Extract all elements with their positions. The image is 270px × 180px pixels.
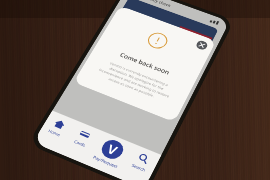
button[interactable]: Cards: [65, 124, 101, 152]
button[interactable]: Close: [195, 39, 209, 51]
staticText: Venmo is currently encountering a disrup…: [94, 58, 176, 104]
button[interactable]: Pay or Request: [98, 137, 127, 162]
button[interactable]: Home: [40, 114, 75, 141]
staticText: Come back soon: [118, 51, 171, 76]
staticText: V: [104, 140, 121, 158]
staticText: Show weekly check: [132, 0, 172, 8]
staticText: Search: [131, 162, 147, 173]
staticText: Home: [47, 128, 61, 137]
staticText: Pay/Request: [92, 154, 119, 169]
button[interactable]: Search: [123, 147, 160, 177]
staticText: Cards: [73, 139, 87, 148]
